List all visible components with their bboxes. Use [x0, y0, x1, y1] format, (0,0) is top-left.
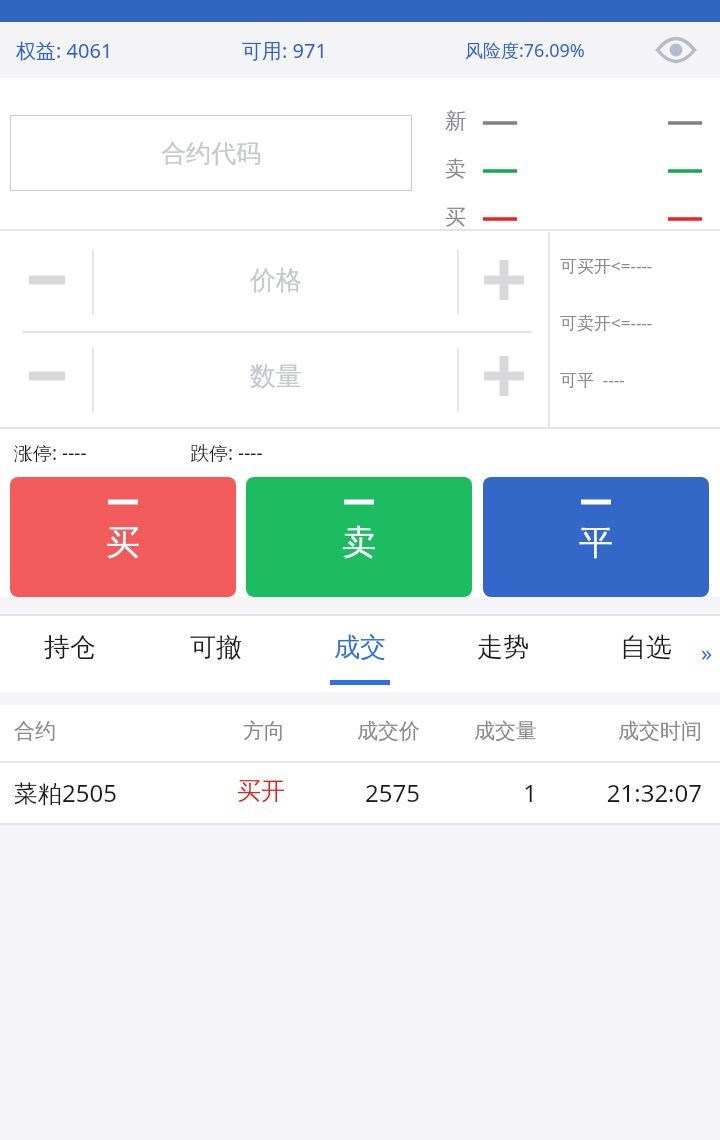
- staticText: 可平 ----: [560, 368, 625, 391]
- button[interactable]: 走势: [448, 617, 558, 691]
- button[interactable]: Decrease 价格: [0, 230, 93, 330]
- staticText: 成交时间: [0, 718, 702, 744]
- staticText: 菜粕2505: [14, 776, 117, 809]
- staticText: 持仓: [44, 631, 96, 664]
- staticText: 合约: [14, 718, 56, 744]
- staticText: 方向: [0, 718, 285, 744]
- button[interactable]: Decrease 数量: [0, 326, 93, 426]
- staticText: »: [701, 637, 713, 663]
- button[interactable]: Increase 数量: [458, 326, 549, 426]
- staticText: 卖: [445, 156, 466, 182]
- button[interactable]: 数量: [93, 326, 458, 426]
- staticText: 权益: 4061: [16, 37, 113, 64]
- staticText: 可用: 971: [242, 37, 327, 64]
- staticText: 数量: [250, 360, 302, 393]
- button[interactable]: Toggle visibility: [650, 24, 702, 76]
- staticText: 价格: [250, 264, 302, 297]
- button[interactable]: More tabs: [694, 637, 720, 663]
- button[interactable]: 菜粕2505: [0, 763, 720, 825]
- button[interactable]: 持仓: [15, 617, 125, 691]
- button[interactable]: 自选: [591, 617, 701, 691]
- button[interactable]: 可撤: [161, 617, 271, 691]
- staticText: 可买开<=----: [560, 254, 653, 277]
- staticText: 自选: [620, 631, 672, 664]
- staticText: 买: [445, 204, 466, 230]
- button[interactable]: 买: [10, 477, 236, 597]
- staticText: 风险度:76.09%: [465, 38, 585, 63]
- staticText: 21:32:07: [0, 776, 702, 809]
- staticText: 涨停: ----: [14, 440, 87, 466]
- button[interactable]: Increase 价格: [458, 230, 549, 330]
- button[interactable]: 价格: [93, 230, 458, 330]
- staticText: 合约代码: [161, 138, 261, 169]
- staticText: 成交: [334, 631, 386, 664]
- staticText: 走势: [477, 631, 529, 664]
- button[interactable]: 平: [483, 477, 709, 597]
- staticText: 跌停: ----: [190, 440, 263, 466]
- button[interactable]: 合约代码: [10, 115, 412, 191]
- staticText: 卖: [342, 521, 376, 564]
- staticText: 成交价: [0, 718, 420, 744]
- staticText: 可卖开<=----: [560, 311, 653, 334]
- staticText: 1: [0, 776, 537, 809]
- staticText: 可撤: [190, 631, 242, 664]
- button[interactable]: 卖: [246, 477, 472, 597]
- staticText: 新: [445, 108, 466, 134]
- staticText: 买: [106, 521, 140, 564]
- staticText: 成交量: [0, 718, 537, 744]
- staticText: 2575: [0, 776, 420, 809]
- button[interactable]: 成交: [305, 617, 415, 691]
- staticText: 平: [579, 521, 613, 564]
- staticText: 买开: [0, 776, 285, 806]
